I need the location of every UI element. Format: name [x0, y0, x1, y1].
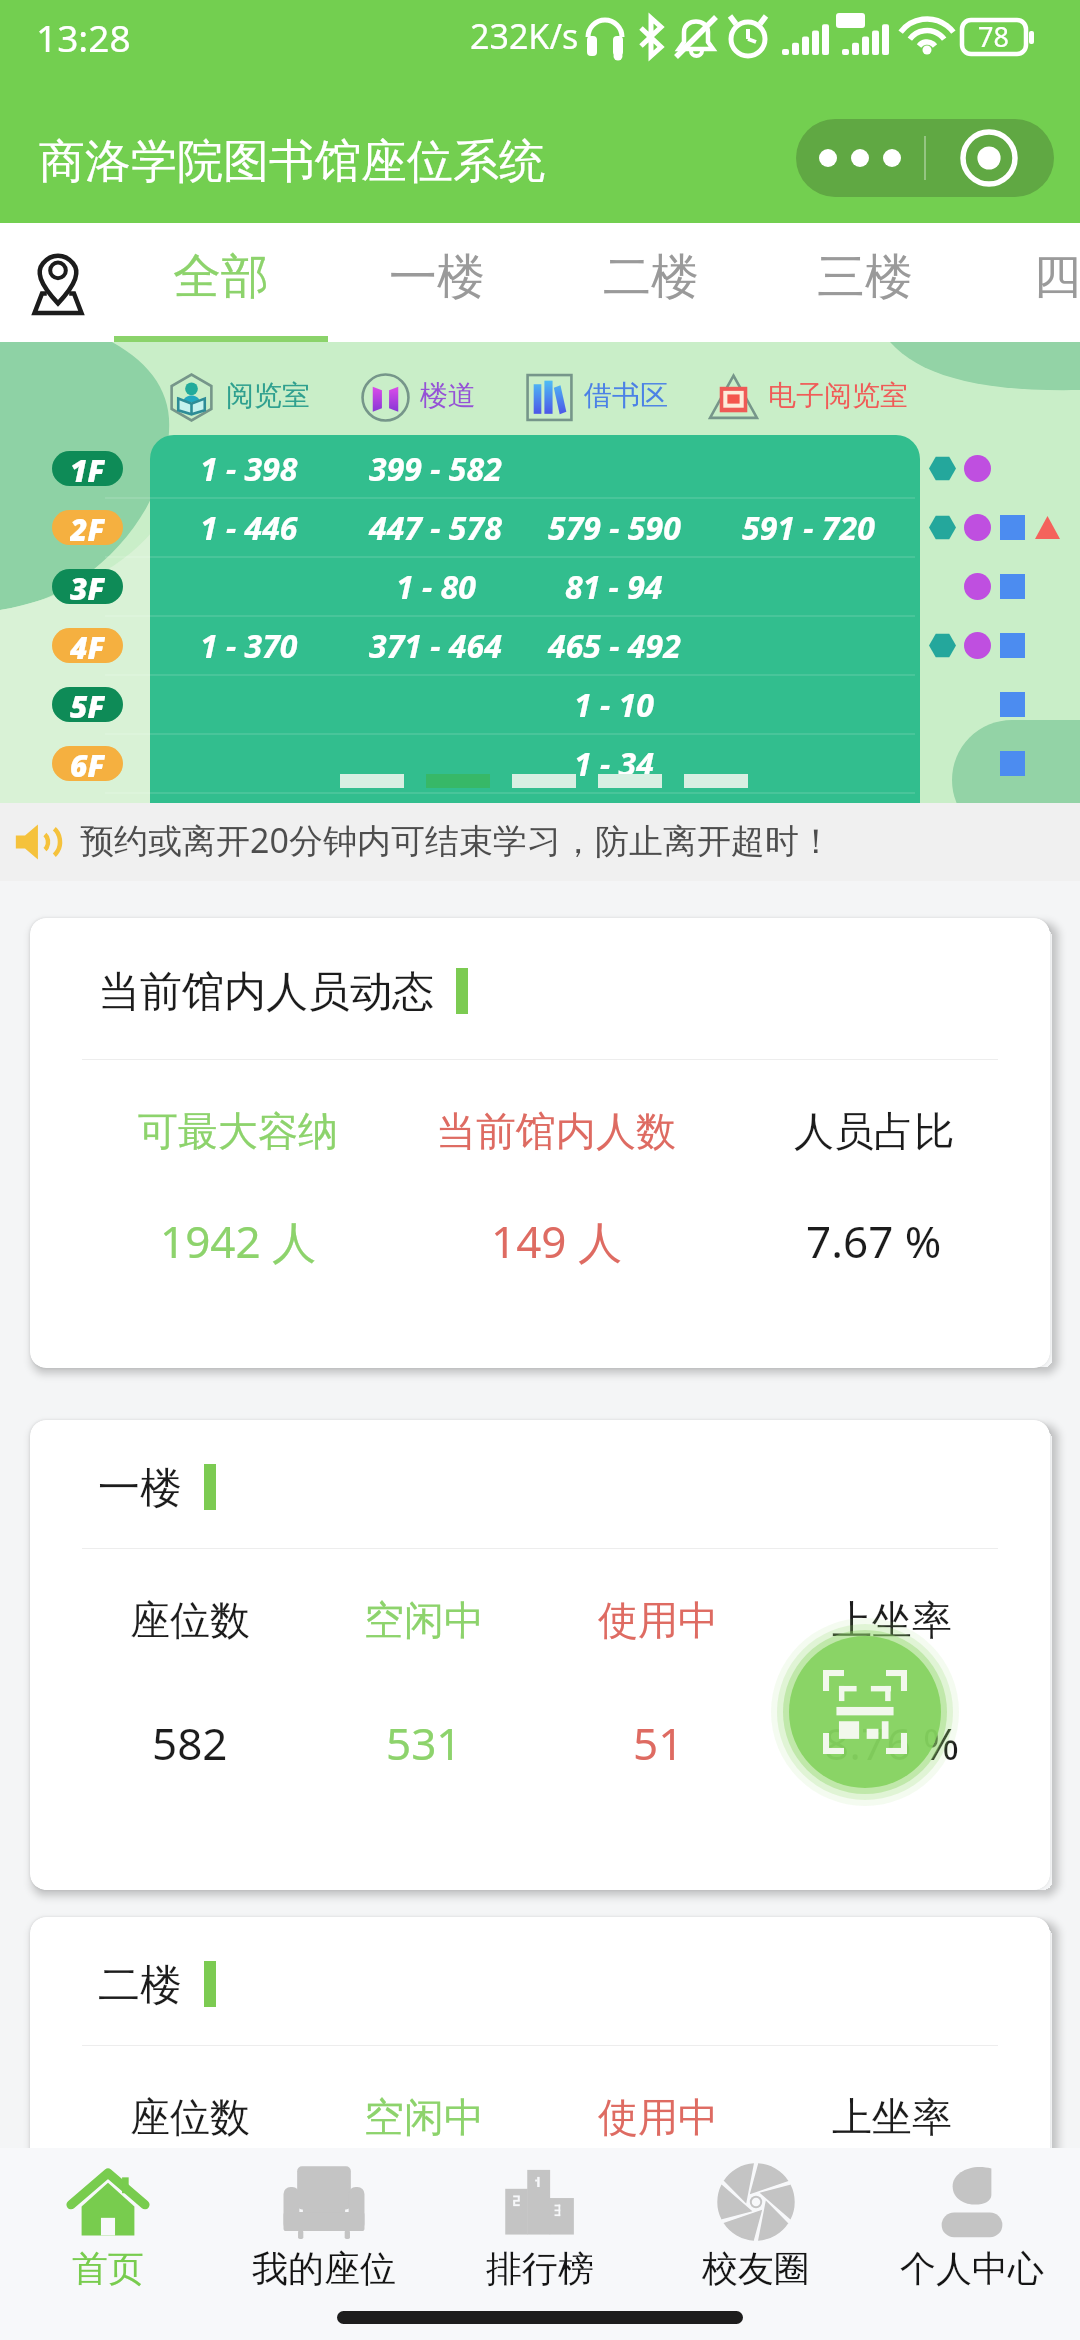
- staticText: 首页: [72, 2246, 144, 2291]
- staticText: 78: [978, 18, 1009, 55]
- staticText: 8.76 %: [824, 1713, 960, 1773]
- staticText: 座位数: [130, 2092, 250, 2142]
- staticText: 商洛学院图书馆座位系统: [39, 133, 545, 191]
- button[interactable]: Scan QR code: [789, 1636, 941, 1788]
- staticText: 当前馆内人员动态: [98, 966, 434, 1019]
- staticText: 51: [633, 1713, 684, 1773]
- button[interactable]: 一楼: [330, 223, 544, 342]
- staticText: 空闲中: [364, 1595, 484, 1645]
- staticText: 阅览室: [226, 378, 310, 413]
- staticText: 4F: [70, 628, 105, 662]
- button[interactable]: 个人中心: [864, 2148, 1080, 2300]
- staticText: 3F: [70, 569, 105, 603]
- staticText: 1 - 34: [574, 742, 654, 786]
- staticText: 可最大容纳: [138, 1106, 338, 1156]
- button[interactable]: 排行榜: [432, 2148, 648, 2300]
- staticText: 一楼: [98, 1462, 182, 1515]
- staticText: 399 - 582: [369, 447, 502, 491]
- staticText: 上坐率: [832, 2092, 952, 2142]
- button[interactable]: 校友圈: [648, 2148, 864, 2300]
- staticText: 一楼: [389, 247, 485, 307]
- staticText: 1F: [70, 451, 105, 485]
- staticText: 借书区: [584, 378, 668, 413]
- button[interactable]: 首页: [0, 2148, 216, 2300]
- staticText: 排行榜: [486, 2246, 594, 2291]
- staticText: 全部: [173, 247, 269, 307]
- staticText: 6F: [70, 746, 105, 780]
- staticText: 1 - 80: [396, 565, 476, 609]
- staticText: 1 - 446: [200, 506, 298, 550]
- staticText: 81 - 94: [565, 565, 663, 609]
- button[interactable]: 二楼: [544, 223, 758, 342]
- button[interactable]: 四: [950, 223, 1080, 342]
- staticText: 149 人: [491, 1211, 622, 1271]
- staticText: 个人中心: [900, 2246, 1044, 2291]
- button[interactable]: More options: [796, 119, 1054, 197]
- staticText: 582: [152, 1713, 228, 1773]
- staticText: 579 - 590: [548, 506, 681, 550]
- staticText: 我的座位: [252, 2246, 396, 2291]
- staticText: 使用中: [598, 2092, 718, 2142]
- staticText: 校友圈: [702, 2246, 810, 2291]
- staticText: 当前馆内人数: [436, 1106, 676, 1156]
- staticText: 7.67 %: [806, 1211, 942, 1271]
- staticText: 座位数: [130, 1595, 250, 1645]
- staticText: 2F: [70, 510, 105, 544]
- staticText: 使用中: [598, 1595, 718, 1645]
- staticText: 232K/s: [470, 13, 579, 59]
- staticText: 空闲中: [364, 2092, 484, 2142]
- staticText: 1 - 398: [200, 447, 298, 491]
- staticText: 电子阅览室: [768, 378, 908, 413]
- staticText: 人员占比: [794, 1106, 954, 1156]
- button[interactable]: 三楼: [758, 223, 972, 342]
- staticText: 13:28: [36, 12, 131, 62]
- staticText: 465 - 492: [548, 624, 681, 668]
- staticText: 二楼: [98, 1959, 182, 2012]
- staticText: 楼道: [420, 378, 476, 413]
- staticText: 三楼: [817, 247, 913, 307]
- button[interactable]: 我的座位: [216, 2148, 432, 2300]
- staticText: 二楼: [603, 247, 699, 307]
- button[interactable]: Location: [16, 241, 100, 325]
- staticText: 1 - 10: [574, 683, 654, 727]
- staticText: 5F: [70, 687, 105, 721]
- staticText: 四: [1033, 247, 1080, 307]
- staticText: 371 - 464: [369, 624, 502, 668]
- staticText: 1 - 370: [200, 624, 298, 668]
- staticText: 447 - 578: [369, 506, 502, 550]
- staticText: 591 - 720: [742, 506, 875, 550]
- staticText: 531: [386, 1713, 462, 1773]
- staticText: 1942 人: [160, 1211, 317, 1271]
- staticText: 上坐率: [832, 1595, 952, 1645]
- button[interactable]: 全部: [114, 223, 328, 342]
- staticText: 预约或离开20分钟内可结束学习，防止离开超时！: [80, 817, 833, 863]
